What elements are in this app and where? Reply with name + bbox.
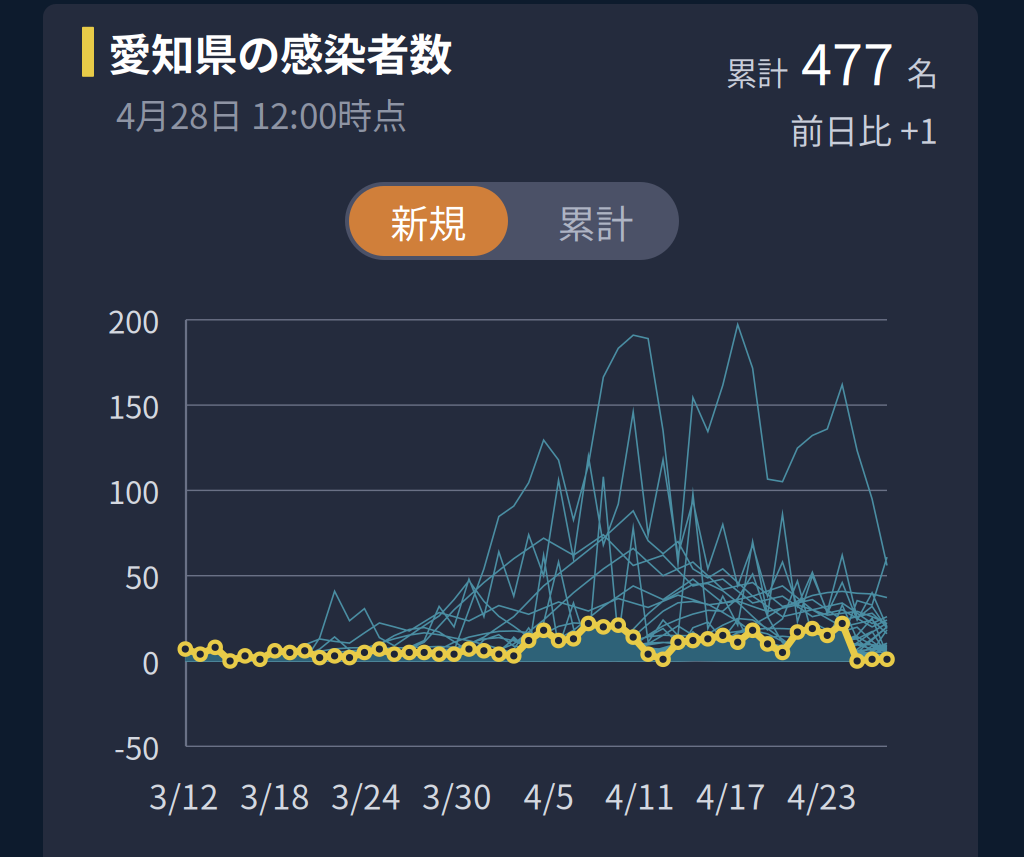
staticText: 3/24 bbox=[331, 771, 401, 819]
staticText: 4/17 bbox=[696, 771, 766, 819]
staticText: -50 bbox=[114, 724, 159, 769]
staticText: 累計 bbox=[726, 49, 788, 94]
staticText: 愛知県の感染者数 bbox=[108, 20, 452, 83]
staticText: 4/11 bbox=[605, 771, 675, 819]
staticText: 4/23 bbox=[787, 771, 857, 819]
staticText: 477 bbox=[801, 20, 894, 101]
staticText: 累計 bbox=[557, 193, 633, 248]
staticText: 4/5 bbox=[523, 771, 574, 819]
staticText: 新規 bbox=[390, 193, 466, 248]
staticText: 0 bbox=[142, 638, 159, 684]
staticText: 200 bbox=[108, 297, 159, 342]
button[interactable]: 新規 bbox=[345, 182, 512, 260]
staticText: 3/12 bbox=[149, 771, 219, 819]
staticText: 名 bbox=[907, 49, 938, 94]
button[interactable]: 累計 bbox=[512, 182, 679, 260]
staticText: 前日比 +1 bbox=[790, 104, 938, 154]
staticText: 4月28日 12:00時点 bbox=[116, 88, 407, 139]
staticText: 3/30 bbox=[422, 771, 492, 819]
staticText: 50 bbox=[125, 553, 159, 598]
staticText: 3/18 bbox=[240, 771, 310, 819]
staticText: 150 bbox=[108, 382, 159, 428]
staticText: 100 bbox=[108, 468, 159, 513]
